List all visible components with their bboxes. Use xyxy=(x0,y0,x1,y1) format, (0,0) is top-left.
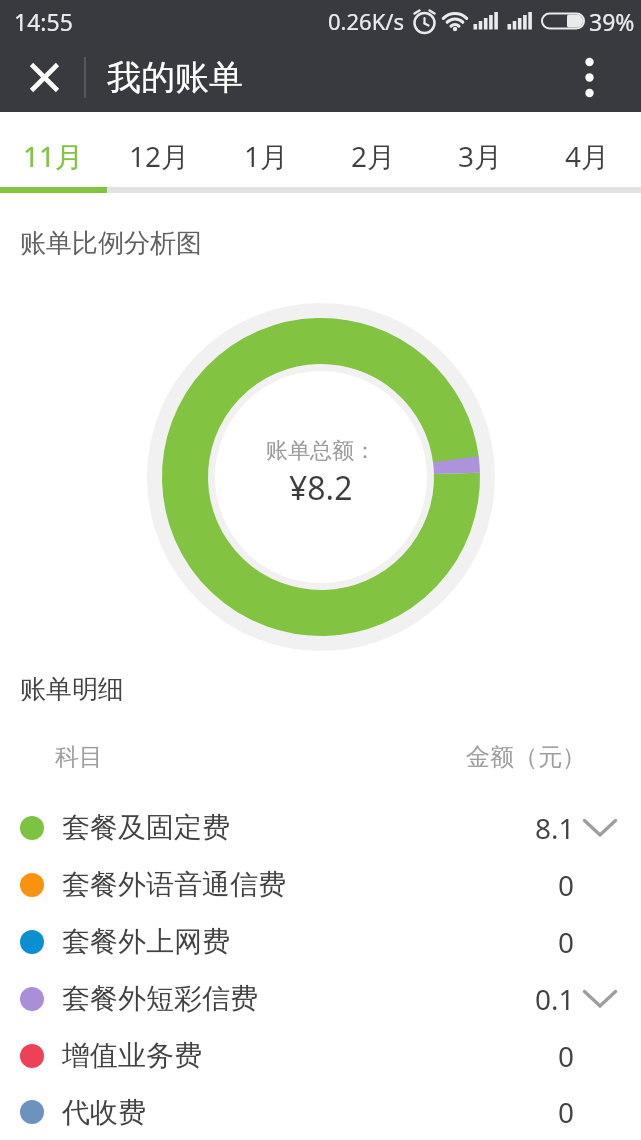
staticText: 账单明细 xyxy=(20,673,124,706)
staticText: ¥8.2 xyxy=(289,466,353,510)
staticText: 账单总额： xyxy=(266,437,376,465)
staticText: 套餐外短彩信费 xyxy=(62,981,258,1016)
staticText: 3月 xyxy=(458,137,503,175)
staticText: 4月 xyxy=(565,137,610,175)
button[interactable] xyxy=(565,53,613,101)
button[interactable]: 11月 xyxy=(0,112,106,187)
staticText: 12月 xyxy=(129,137,190,175)
button[interactable]: 套餐外语音通信费 xyxy=(0,856,641,913)
button[interactable]: 套餐外短彩信费 xyxy=(0,970,641,1027)
staticText: 0.1 xyxy=(535,980,575,1018)
staticText: 代收费 xyxy=(62,1095,146,1130)
button[interactable] xyxy=(20,53,68,101)
button[interactable]: 4月 xyxy=(534,112,641,187)
staticText: 0 xyxy=(558,923,575,961)
staticText: 1月 xyxy=(244,137,289,175)
button[interactable]: 套餐及固定费 xyxy=(0,799,641,856)
staticText: 2月 xyxy=(351,137,396,175)
staticText: 11月 xyxy=(23,137,84,175)
staticText: 0 xyxy=(558,1093,575,1131)
staticText: 科目 xyxy=(55,742,103,772)
staticText: 我的账单 xyxy=(107,56,243,99)
staticText: 0 xyxy=(558,866,575,904)
button[interactable]: 1月 xyxy=(213,112,320,187)
staticText: 套餐外上网费 xyxy=(62,924,230,959)
staticText: 套餐外语音通信费 xyxy=(62,867,286,902)
staticText: 8.1 xyxy=(535,809,575,847)
staticText: 增值业务费 xyxy=(62,1038,202,1073)
button[interactable]: 代收费 xyxy=(0,1084,641,1140)
staticText: 0.26K/s xyxy=(328,6,404,36)
button[interactable]: 2月 xyxy=(320,112,427,187)
staticText: 账单比例分析图 xyxy=(20,227,202,260)
staticText: 14:55 xyxy=(14,6,73,37)
button[interactable]: 套餐外上网费 xyxy=(0,913,641,970)
staticText: 金额（元） xyxy=(466,742,586,772)
button[interactable]: 3月 xyxy=(427,112,534,187)
staticText: 套餐及固定费 xyxy=(62,810,230,845)
button[interactable]: 12月 xyxy=(106,112,213,187)
button[interactable]: 增值业务费 xyxy=(0,1027,641,1084)
staticText: 0 xyxy=(558,1037,575,1075)
staticText: 39% xyxy=(589,6,635,37)
